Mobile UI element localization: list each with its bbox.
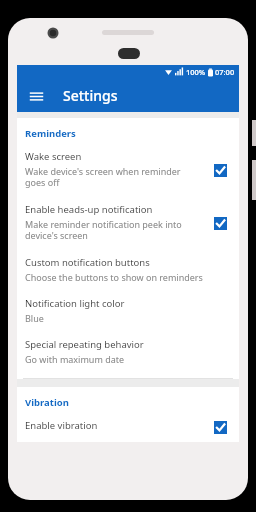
staticText: Blue — [25, 312, 44, 324]
staticText: Make reminder notification peek into dev… — [25, 218, 201, 242]
button[interactable]: Special repeating behavior — [17, 331, 239, 372]
button[interactable]: Enable vibration — [17, 412, 239, 442]
staticText: 100% — [186, 67, 206, 77]
button[interactable]: Enable vibration toggle — [209, 419, 231, 435]
staticText: Vibration — [25, 396, 69, 409]
button[interactable]: Enable heads-up notification toggle — [209, 212, 231, 234]
staticText: Special repeating behavior — [25, 338, 144, 351]
staticText: Wake screen — [25, 150, 82, 163]
staticText: Custom notification buttons — [25, 256, 150, 269]
staticText: Wake device's screen when reminder goes … — [25, 165, 201, 189]
staticText: 07:00 — [215, 67, 235, 77]
staticText: Enable heads-up notification — [25, 203, 153, 216]
button[interactable]: Custom notification buttons — [17, 249, 239, 290]
button[interactable]: Enable heads-up notification — [17, 196, 239, 249]
button[interactable]: Open navigation menu — [23, 83, 49, 109]
staticText: Choose the buttons to show on reminders — [25, 271, 203, 283]
staticText: Enable vibration — [25, 419, 98, 432]
staticText: Reminders — [25, 127, 76, 140]
button[interactable]: Wake screen toggle — [209, 159, 231, 181]
button[interactable]: Notification light color — [17, 290, 239, 331]
staticText: Settings — [63, 86, 118, 105]
button[interactable]: Wake screen — [17, 143, 239, 196]
staticText: Go with maximum date — [25, 353, 125, 365]
staticText: Notification light color — [25, 297, 125, 310]
